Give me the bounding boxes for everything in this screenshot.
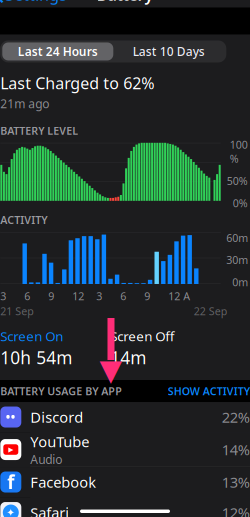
- staticText: 50%: [227, 174, 248, 188]
- staticText: Safari: [30, 503, 69, 517]
- button[interactable]: ••: [0, 402, 250, 432]
- staticText: 14m: [110, 346, 146, 369]
- staticText: Settings: [5, 0, 67, 5]
- staticText: ✦: [6, 506, 15, 517]
- staticText: Screen On: [0, 327, 63, 345]
- staticText: 9: [48, 289, 54, 303]
- staticText: 3: [96, 289, 102, 303]
- staticText: BATTERY LEVEL: [0, 124, 78, 138]
- staticText: 6: [120, 289, 126, 303]
- staticText: 12 A: [168, 289, 190, 303]
- staticText: 30m: [226, 253, 248, 267]
- button[interactable]: Last 24 Hours: [2, 42, 113, 60]
- staticText: ACTIVITY: [0, 213, 47, 227]
- staticText: Discord: [30, 407, 83, 427]
- staticText: 6: [24, 289, 30, 303]
- staticText: f: [7, 470, 14, 494]
- staticText: 100%: [230, 137, 248, 166]
- staticText: 22 Sep: [194, 304, 228, 318]
- staticText: 21m ago: [0, 96, 49, 112]
- staticText: 0m: [232, 275, 248, 289]
- staticText: ••: [6, 409, 16, 425]
- staticText: Battery: [96, 0, 153, 5]
- staticText: 21 Sep: [0, 304, 34, 318]
- staticText: 12%: [222, 503, 250, 517]
- staticText: 10h 54m: [0, 346, 72, 369]
- button[interactable]: ▶: [0, 432, 250, 467]
- button[interactable]: Last 10 Days: [113, 42, 224, 60]
- staticText: SHOW ACTIVITY: [168, 384, 250, 398]
- staticText: 13%: [222, 472, 250, 492]
- staticText: 12: [72, 289, 84, 303]
- staticText: 22%: [222, 407, 250, 427]
- staticText: ‹: [0, 0, 4, 11]
- staticText: 0%: [233, 196, 248, 210]
- staticText: BATTERY USAGE BY APP: [0, 384, 122, 398]
- staticText: ▼: [99, 353, 122, 387]
- staticText: Last 10 Days: [133, 43, 205, 59]
- button[interactable]: ✦: [0, 497, 250, 517]
- staticText: Last 24 Hours: [18, 43, 98, 59]
- staticText: Audio: [30, 451, 62, 467]
- staticText: YouTube: [30, 432, 89, 451]
- button[interactable]: ‹: [0, 0, 73, 7]
- button[interactable]: SHOW ACTIVITY: [168, 384, 250, 398]
- button[interactable]: f: [0, 467, 250, 497]
- staticText: Screen Off: [110, 327, 174, 345]
- staticText: 9: [144, 289, 150, 303]
- staticText: 3: [0, 289, 6, 303]
- staticText: ▶: [8, 446, 13, 453]
- staticText: 14%: [222, 440, 250, 459]
- staticText: Last Charged to 62%: [0, 72, 154, 94]
- staticText: 60m: [226, 231, 248, 245]
- staticText: Facebook: [30, 472, 96, 492]
